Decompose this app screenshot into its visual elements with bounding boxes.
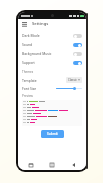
staticText: Themes: [22, 70, 34, 74]
staticText: Sound: [22, 42, 33, 47]
button[interactable]: List: [43, 160, 61, 170]
button[interactable]: Submit: [41, 130, 64, 138]
staticText: Background Music: [22, 51, 52, 56]
button[interactable]: Dark Mode: [22, 31, 82, 40]
staticText: Template: [22, 78, 37, 83]
staticText: Support: [22, 60, 35, 65]
staticText: Preview: [22, 94, 33, 98]
button[interactable]: Support: [22, 58, 82, 67]
button[interactable]: Template: [22, 76, 82, 84]
button[interactable]: Sound: [22, 40, 82, 49]
button[interactable]: Back: [65, 160, 83, 170]
staticText: Dark Mode: [22, 33, 40, 38]
staticText: Classic: [68, 78, 77, 82]
button[interactable]: Background Music: [22, 49, 82, 58]
staticText: Font Size: [22, 86, 37, 91]
staticText: Settings: [32, 21, 49, 27]
button[interactable]: Home: [22, 160, 40, 170]
button[interactable]: [56, 85, 82, 92]
button[interactable]: Menu: [21, 21, 27, 27]
staticText: Submit: [47, 132, 58, 136]
